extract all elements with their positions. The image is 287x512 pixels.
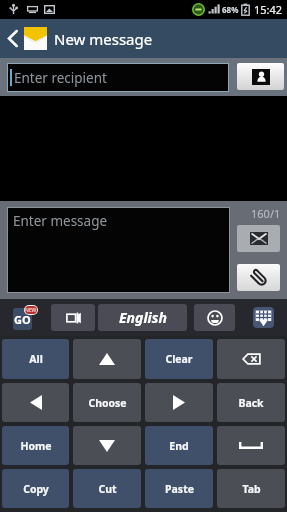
- staticText: Back: [238, 396, 264, 410]
- button[interactable]: Send: [237, 225, 280, 252]
- button[interactable]: Select contact: [237, 63, 284, 90]
- button[interactable]: Copy: [2, 469, 69, 508]
- button[interactable]: Enter recipient: [8, 64, 228, 91]
- staticText: 15:42: [254, 2, 283, 17]
- staticText: Cut: [98, 482, 117, 496]
- button[interactable]: space: [217, 426, 285, 465]
- button[interactable]: Clear: [145, 339, 213, 379]
- button[interactable]: down: [73, 426, 141, 465]
- button[interactable]: up: [73, 339, 141, 379]
- staticText: Enter recipient: [14, 69, 107, 87]
- staticText: Enter message: [13, 212, 108, 230]
- button[interactable]: Attach: [237, 264, 280, 291]
- staticText: All: [29, 352, 43, 366]
- staticText: GO: [14, 312, 31, 327]
- staticText: 68%: [222, 4, 239, 15]
- button[interactable]: GO Keyboard settings: [9, 303, 39, 333]
- staticText: Clear: [165, 352, 193, 366]
- staticText: Tab: [242, 482, 261, 496]
- button[interactable]: bksp: [217, 339, 285, 379]
- button[interactable]: Paste: [145, 469, 213, 508]
- staticText: English: [119, 308, 167, 327]
- button[interactable]: Emoji: [194, 304, 235, 331]
- button[interactable]: right: [145, 383, 213, 422]
- button[interactable]: Enter message: [8, 208, 229, 292]
- staticText: NEW: [25, 307, 37, 314]
- staticText: End: [169, 439, 189, 453]
- staticText: Home: [20, 439, 52, 453]
- button[interactable]: Voice input: [51, 304, 95, 331]
- button[interactable]: Choose: [73, 383, 141, 422]
- button[interactable]: Hide keyboard: [247, 303, 279, 332]
- button[interactable]: All: [2, 339, 69, 379]
- staticText: Copy: [23, 482, 49, 496]
- staticText: Choose: [88, 396, 127, 410]
- staticText: 160/1: [251, 206, 281, 221]
- button[interactable]: End: [145, 426, 213, 465]
- button[interactable]: Tab: [217, 469, 285, 508]
- button[interactable]: Home: [2, 426, 69, 465]
- button[interactable]: Cut: [73, 469, 141, 508]
- button[interactable]: Back: [217, 383, 285, 422]
- button[interactable]: Back: [0, 19, 47, 58]
- staticText: Paste: [165, 482, 194, 496]
- button[interactable]: left: [2, 383, 69, 422]
- button[interactable]: English: [98, 304, 187, 331]
- staticText: New message: [54, 29, 153, 49]
